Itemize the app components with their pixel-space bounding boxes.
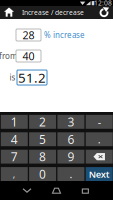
button[interactable]: % increase bbox=[44, 29, 110, 40]
button[interactable]: 6 bbox=[57, 132, 84, 146]
button[interactable]: 7 bbox=[1, 150, 28, 164]
staticText: . bbox=[98, 132, 101, 146]
button[interactable]: 9 bbox=[57, 150, 84, 164]
staticText: 40 bbox=[22, 49, 34, 63]
button[interactable]: 1 bbox=[1, 115, 28, 129]
button[interactable]: 4 bbox=[1, 132, 28, 146]
button[interactable]: . bbox=[57, 167, 84, 181]
staticText: 1 bbox=[11, 114, 18, 130]
staticText: 0 bbox=[39, 166, 46, 182]
staticText: is bbox=[9, 72, 15, 83]
staticText: 8 bbox=[39, 149, 46, 165]
button[interactable]: 3 bbox=[57, 115, 84, 129]
button[interactable]: 8 bbox=[29, 150, 56, 164]
button[interactable]: 51.2 bbox=[17, 70, 47, 85]
button[interactable]: Recent apps bbox=[74, 183, 98, 197]
button[interactable]: 5 bbox=[29, 132, 56, 146]
button[interactable]: Reset bbox=[95, 6, 112, 19]
staticText: from bbox=[0, 51, 17, 61]
staticText: 51.2 bbox=[18, 69, 46, 86]
staticText: 3 bbox=[67, 114, 74, 130]
button[interactable]: , bbox=[1, 167, 28, 181]
staticText: Next bbox=[89, 168, 110, 180]
button[interactable]: 0 bbox=[29, 167, 56, 181]
staticText: 7 bbox=[11, 149, 18, 165]
staticText: 12:08 bbox=[94, 0, 112, 7]
staticText: - bbox=[98, 115, 101, 129]
button[interactable]: Back bbox=[15, 183, 39, 197]
staticText: Increase / decrease bbox=[22, 8, 84, 17]
staticText: , bbox=[13, 168, 16, 180]
button[interactable]: - bbox=[86, 115, 113, 129]
staticText: 2 bbox=[39, 114, 46, 130]
button[interactable]: 28 bbox=[16, 29, 41, 41]
button[interactable]: Delete bbox=[86, 150, 113, 164]
button[interactable]: 2 bbox=[29, 115, 56, 129]
staticText: % increase bbox=[44, 30, 85, 40]
staticText: 4 bbox=[11, 131, 18, 147]
button[interactable]: Home bbox=[44, 183, 68, 197]
staticText: 6 bbox=[67, 131, 74, 147]
button[interactable]: . bbox=[86, 132, 113, 146]
staticText: 28 bbox=[22, 28, 34, 42]
staticText: 5 bbox=[39, 131, 46, 147]
button[interactable]: Home bbox=[1, 6, 17, 19]
staticText: . bbox=[69, 167, 72, 181]
staticText: 9 bbox=[67, 149, 74, 165]
button[interactable]: Next bbox=[86, 167, 113, 181]
button[interactable]: 40 bbox=[16, 50, 41, 62]
